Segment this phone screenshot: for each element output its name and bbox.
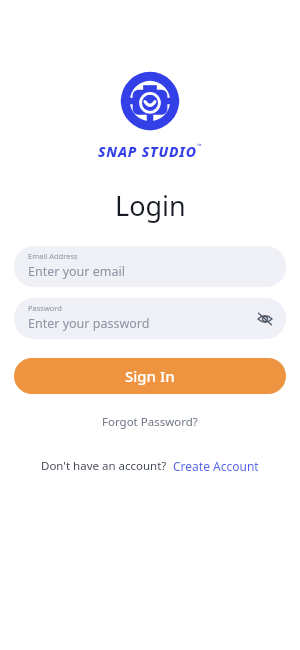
- staticText: Enter your email: [28, 263, 125, 280]
- staticText: Email Address: [28, 251, 78, 261]
- button[interactable]: Password: [14, 298, 286, 339]
- staticText: ™: [197, 142, 202, 150]
- staticText: SNAP STUDIO: [98, 142, 197, 161]
- staticText: Create Account: [173, 458, 259, 474]
- staticText: Password: [28, 303, 62, 313]
- button[interactable]: Sign In: [14, 358, 286, 394]
- button[interactable]: Show password: [252, 306, 278, 332]
- staticText: Forgot Password?: [102, 414, 198, 430]
- staticText: Sign In: [125, 366, 175, 386]
- button[interactable]: Forgot Password?: [94, 411, 206, 433]
- button[interactable]: Create Account: [173, 458, 259, 474]
- staticText: Enter your password: [28, 315, 150, 332]
- staticText: Login: [115, 187, 186, 224]
- staticText: Don't have an account?: [41, 458, 167, 474]
- button[interactable]: Email Address: [14, 246, 286, 287]
